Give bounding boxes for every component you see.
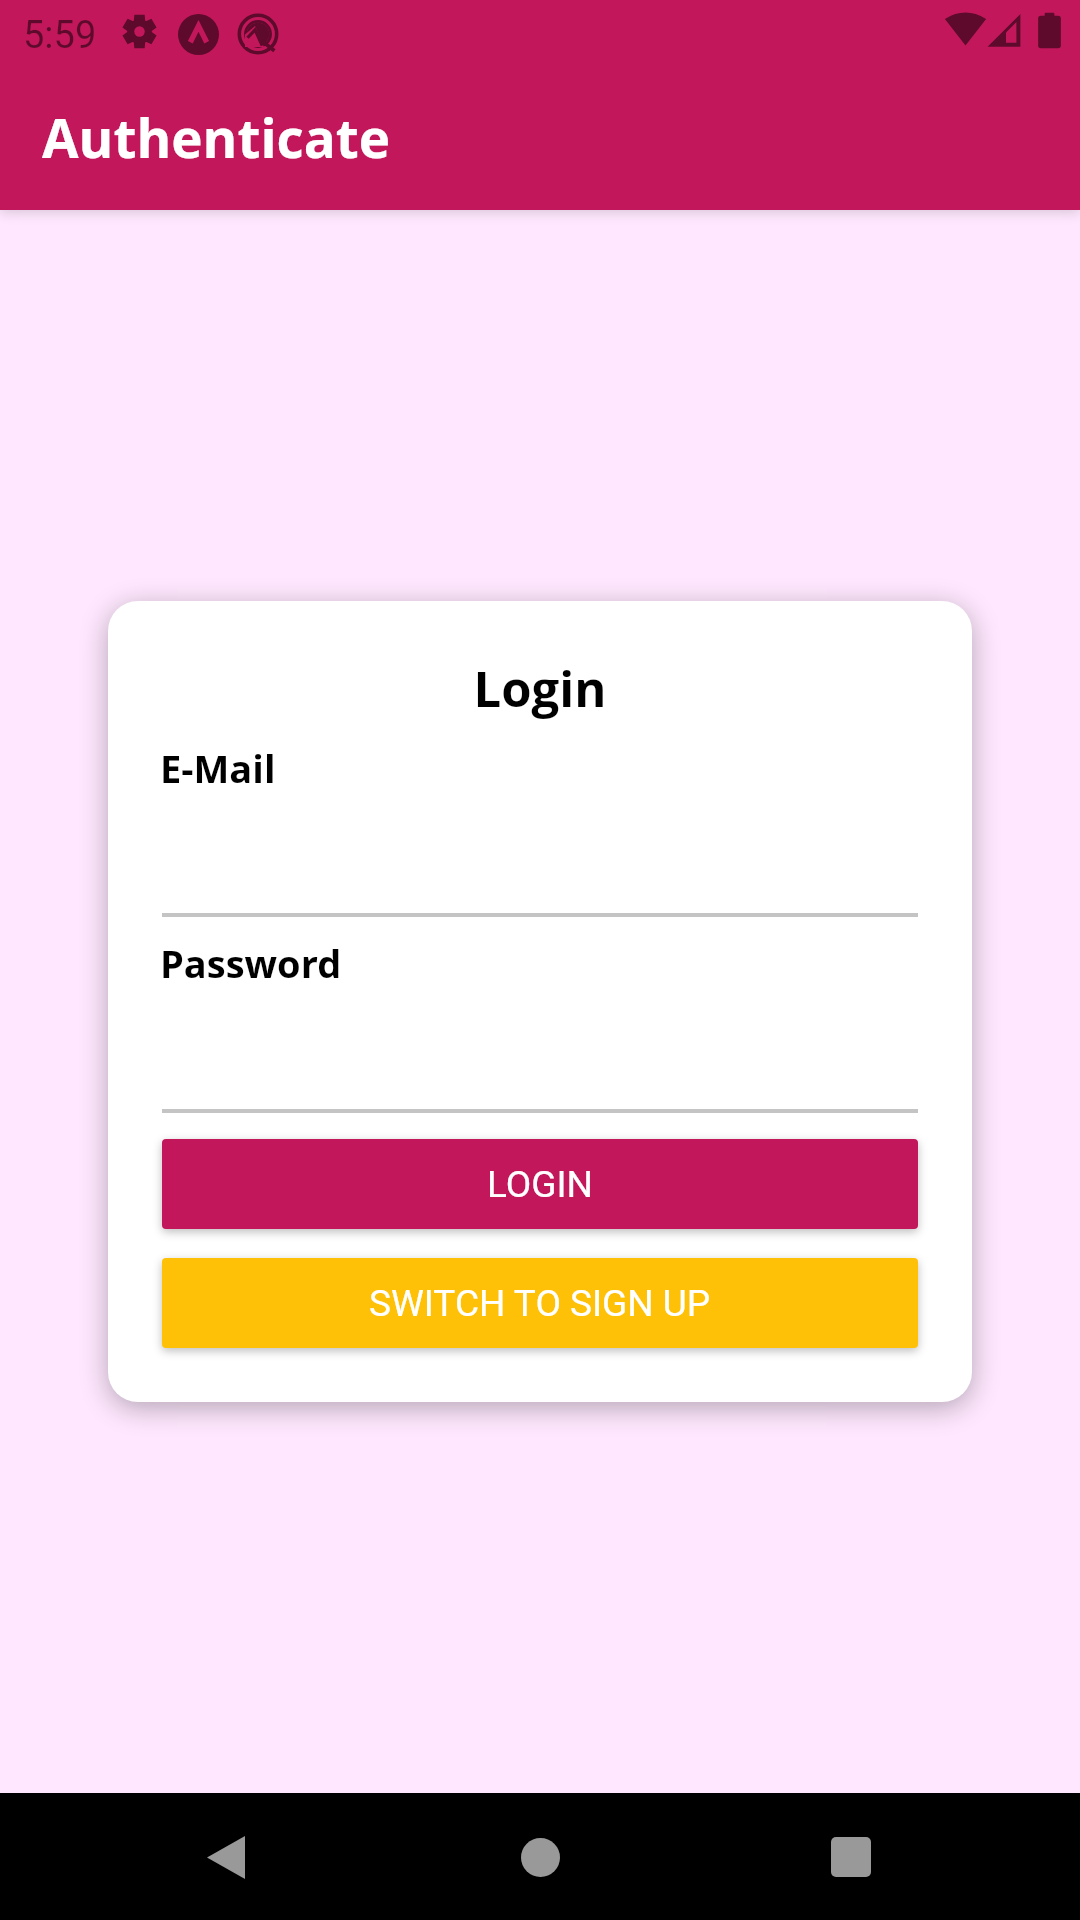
staticText: LOGIN: [487, 1163, 593, 1206]
button[interactable]: SWITCH TO SIGN UP: [162, 1258, 918, 1348]
staticText: Login: [108, 655, 972, 722]
button[interactable]: E-Mail: [162, 734, 918, 917]
staticText: Authenticate: [42, 101, 391, 173]
staticText: Password: [160, 937, 342, 989]
staticText: E-Mail: [160, 742, 276, 794]
button[interactable]: Home: [495, 1812, 585, 1902]
button[interactable]: Password: [162, 929, 918, 1113]
staticText: SWITCH TO SIGN UP: [369, 1282, 711, 1325]
staticText: 5:59: [23, 13, 97, 58]
button[interactable]: Back: [181, 1812, 271, 1902]
button[interactable]: Recent apps: [806, 1812, 896, 1902]
button[interactable]: LOGIN: [162, 1139, 918, 1229]
